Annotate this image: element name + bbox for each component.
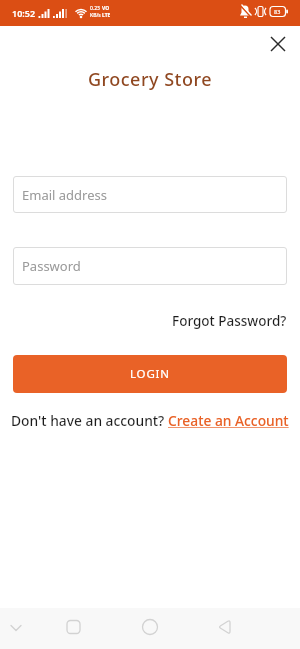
- button[interactable]: [150, 608, 225, 649]
- button[interactable]: [75, 608, 150, 649]
- staticText: Password: [22, 257, 81, 275]
- button[interactable]: [0, 608, 75, 649]
- staticText: LOGIN: [130, 366, 170, 382]
- staticText: 0.23 KB/s: [90, 5, 101, 18]
- button[interactable]: LOGIN: [13, 355, 287, 393]
- staticText: 10:52: [12, 7, 36, 19]
- staticText: 83: [274, 8, 281, 15]
- button[interactable]: Email address: [13, 176, 287, 213]
- staticText: Grocery Store: [0, 67, 300, 92]
- staticText: VO LTE: [102, 5, 111, 18]
- button[interactable]: Forgot Password?: [172, 312, 287, 330]
- button[interactable]: [265, 31, 291, 57]
- button[interactable]: Password: [13, 247, 287, 285]
- staticText: Don't have an account?: [11, 411, 168, 430]
- staticText: Email address: [22, 186, 107, 204]
- button[interactable]: Create an Account: [168, 411, 289, 430]
